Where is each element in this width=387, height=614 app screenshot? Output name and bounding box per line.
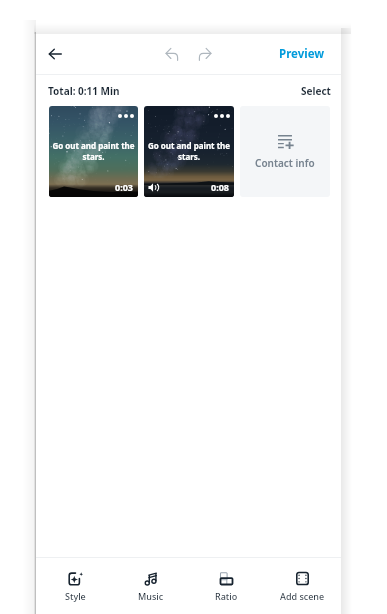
button[interactable]: Select: [291, 79, 341, 103]
button[interactable]: Undo: [156, 38, 188, 70]
staticText: 0:03: [115, 181, 133, 193]
button[interactable]: Back: [38, 37, 72, 71]
button[interactable]: Ratio: [190, 567, 262, 606]
staticText: Preview: [279, 46, 325, 62]
button[interactable]: More options: [214, 114, 230, 118]
button[interactable]: Add scene: [266, 567, 338, 606]
staticText: Contact info: [255, 156, 315, 170]
button[interactable]: Style: [39, 567, 111, 606]
button[interactable]: More options: [118, 114, 134, 118]
button[interactable]: More options: [144, 106, 234, 197]
staticText: 0:08: [211, 181, 229, 193]
staticText: Ratio: [215, 590, 238, 602]
staticText: Go out and paint the stars.: [144, 140, 234, 162]
button[interactable]: Redo: [189, 38, 221, 70]
staticText: Add scene: [280, 590, 325, 602]
staticText: Style: [65, 590, 86, 602]
button[interactable]: Contact info: [240, 106, 330, 197]
button[interactable]: More options: [49, 106, 138, 197]
staticText: Music: [138, 590, 164, 602]
staticText: Go out and paint the stars.: [49, 140, 138, 162]
button[interactable]: Preview: [271, 40, 333, 68]
staticText: Select: [301, 84, 331, 98]
button[interactable]: Music: [115, 567, 187, 606]
staticText: Total: 0:11 Min: [48, 84, 120, 98]
